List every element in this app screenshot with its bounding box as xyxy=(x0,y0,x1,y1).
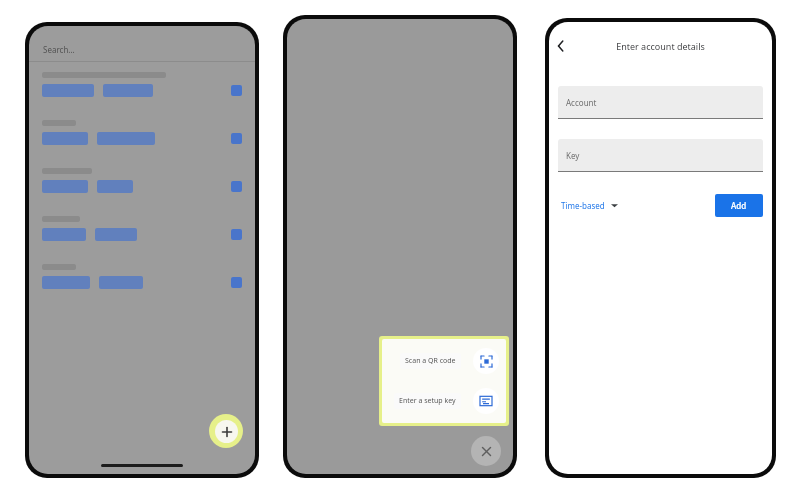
staticText: Add xyxy=(731,200,747,211)
button[interactable]: Enter a setup key xyxy=(385,385,503,417)
button[interactable]: Account xyxy=(558,86,763,119)
staticText: Time-based xyxy=(561,200,605,211)
staticText: Account xyxy=(566,97,597,108)
staticText: Key xyxy=(566,150,580,161)
staticText: Enter account details xyxy=(573,40,748,52)
button[interactable]: Back xyxy=(549,34,573,58)
button[interactable]: Time-based xyxy=(558,197,621,214)
button[interactable]: Close xyxy=(471,436,501,466)
other: Scan a QR code xyxy=(473,348,499,374)
button[interactable]: Add account xyxy=(209,414,243,448)
button[interactable]: Scan a QR code xyxy=(385,345,503,377)
button[interactable]: Key xyxy=(558,139,763,172)
button[interactable]: Search... xyxy=(29,44,255,55)
staticText: Scan a QR code xyxy=(405,356,456,366)
other: Enter a setup key xyxy=(473,388,499,414)
staticText: Enter a setup key xyxy=(399,396,456,406)
button[interactable]: Add xyxy=(715,194,763,217)
